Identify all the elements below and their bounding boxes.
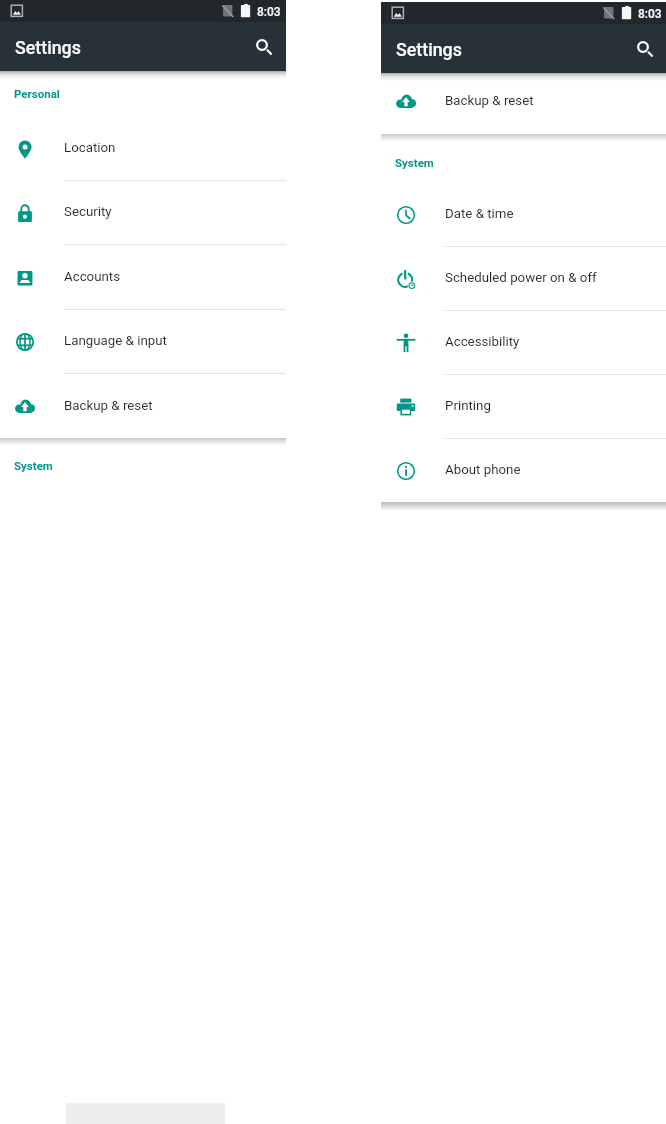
button[interactable]: Search — [626, 26, 660, 60]
staticText: 8:03 — [638, 7, 662, 21]
staticText: Settings — [15, 37, 81, 58]
button[interactable]: Location — [0, 116, 286, 181]
staticText: Language & input — [64, 333, 167, 349]
button[interactable]: Scheduled power on & off — [381, 247, 666, 311]
staticText: Settings — [396, 39, 462, 60]
button[interactable]: Accessibility — [381, 311, 666, 375]
staticText: Scheduled power on & off — [445, 270, 597, 286]
staticText: Security — [64, 204, 112, 220]
staticText: Location — [64, 140, 116, 156]
button[interactable]: Backup & reset — [0, 374, 286, 439]
button[interactable]: Search — [245, 24, 279, 58]
staticText: Date & time — [445, 206, 514, 222]
staticText: About phone — [445, 462, 521, 478]
button[interactable]: Security — [0, 180, 286, 245]
staticText: Backup & reset — [445, 93, 534, 109]
staticText: Personal — [14, 87, 60, 100]
staticText: Accounts — [64, 269, 121, 285]
staticText: System — [395, 156, 434, 169]
staticText: Printing — [445, 398, 491, 414]
staticText: Accessibility — [445, 334, 520, 350]
staticText: Backup & reset — [64, 398, 153, 414]
staticText: System — [14, 459, 53, 472]
button[interactable]: Backup & reset — [381, 70, 666, 134]
button[interactable]: Language & input — [0, 309, 286, 374]
button[interactable]: Printing — [381, 375, 666, 439]
staticText: 8:03 — [257, 5, 281, 19]
button[interactable]: About phone — [381, 439, 666, 503]
button[interactable]: Accounts — [0, 245, 286, 310]
button[interactable]: Date & time — [381, 183, 666, 247]
